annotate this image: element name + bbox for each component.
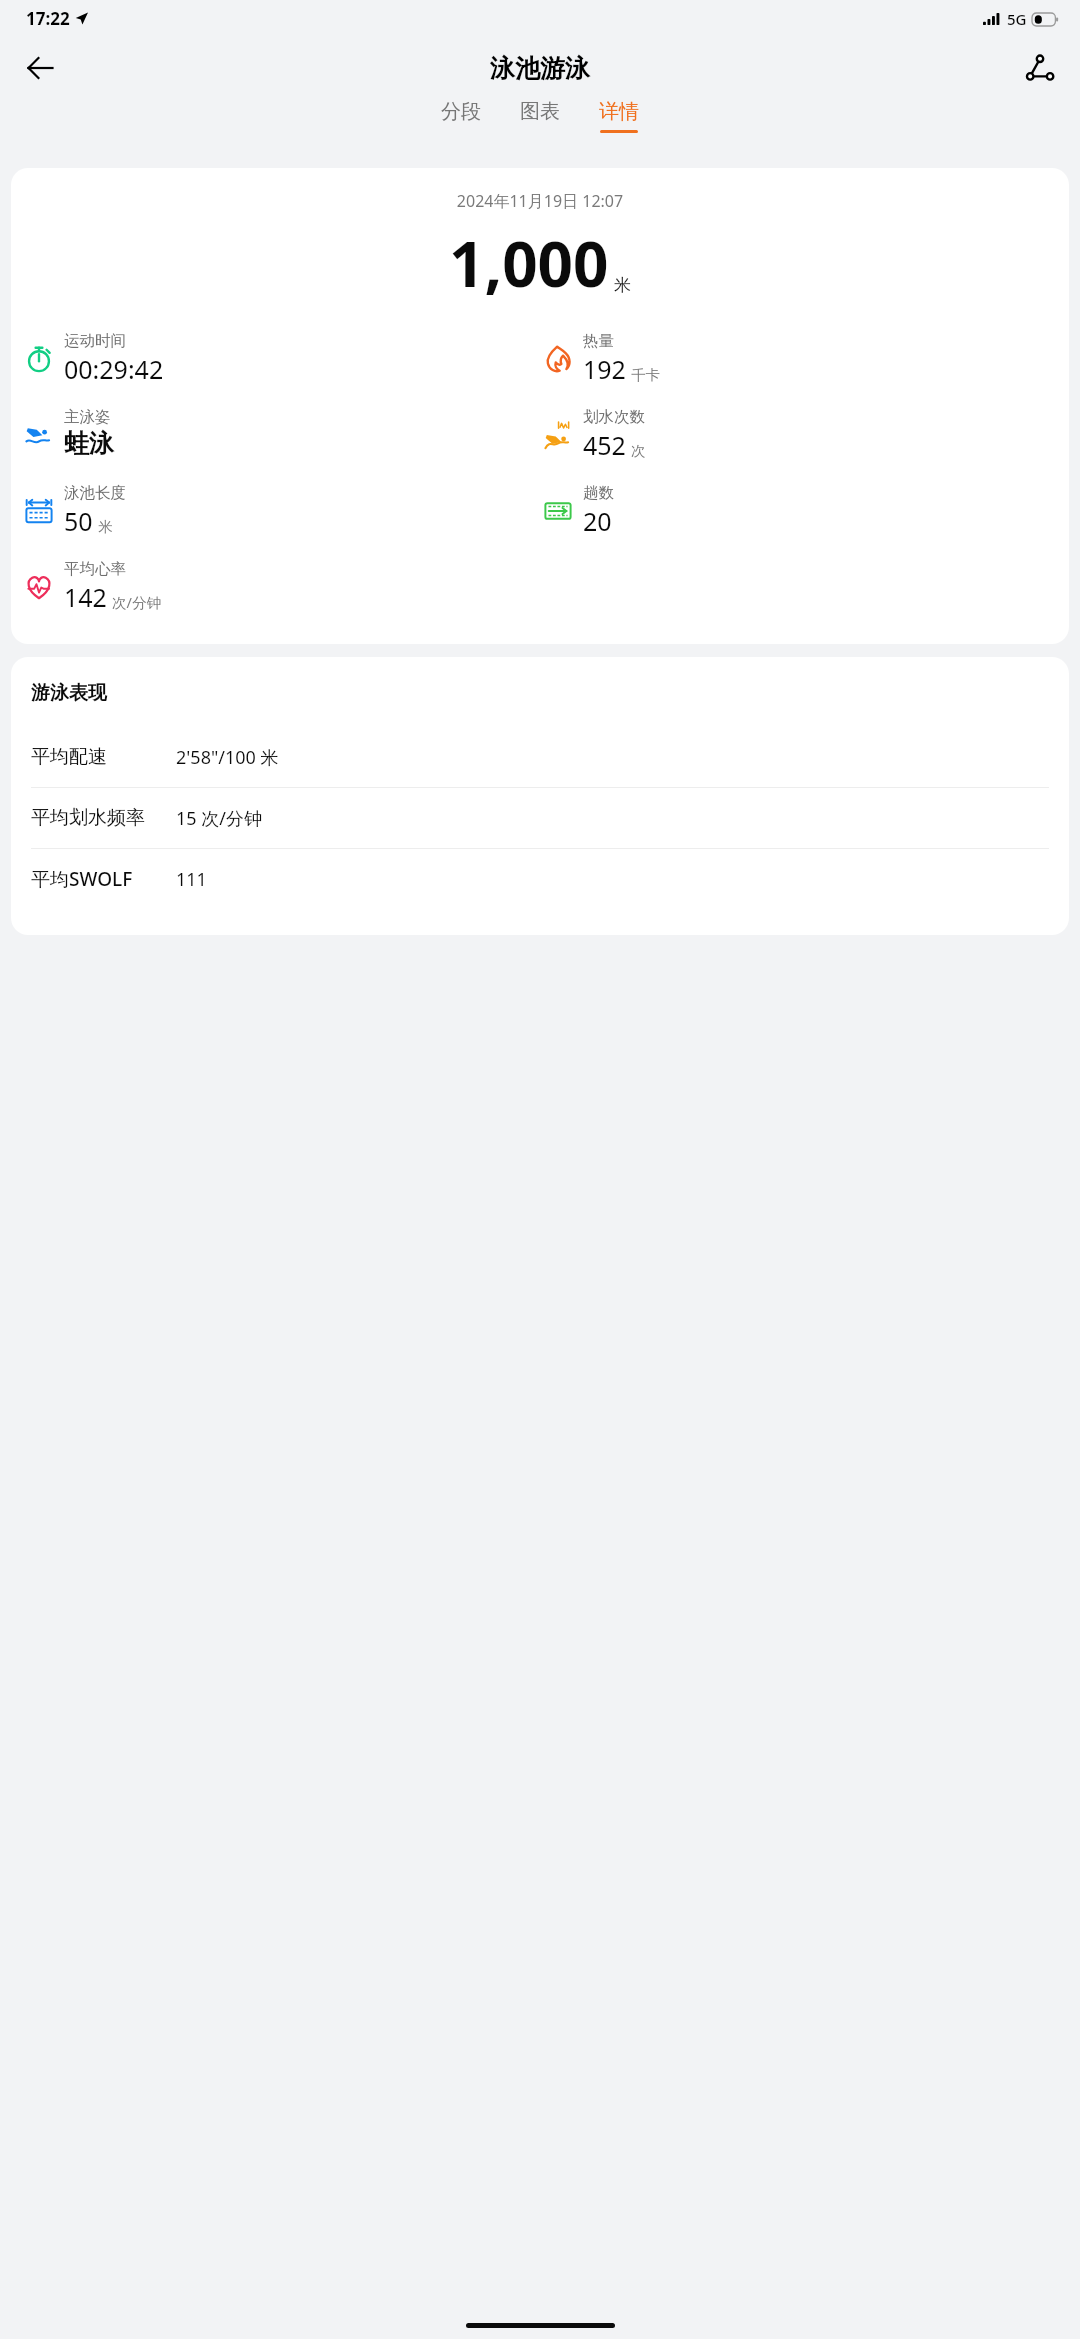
staticText: 平均配速: [31, 745, 107, 769]
staticText: 20: [583, 504, 612, 538]
staticText: 图表: [520, 99, 560, 124]
button[interactable]: 平均划水频率: [11, 788, 1069, 848]
staticText: 15 次/分钟: [176, 806, 262, 831]
staticText: 泳池游泳: [490, 53, 590, 84]
staticText: 主泳姿: [64, 407, 111, 427]
staticText: 千卡: [631, 366, 660, 384]
staticText: 蛙泳: [64, 428, 114, 459]
staticText: 00:29:42: [64, 352, 164, 386]
staticText: 热量: [583, 331, 614, 351]
staticText: 111: [176, 867, 207, 892]
staticText: 游泳表现: [31, 681, 107, 705]
button[interactable]: 详情: [595, 99, 643, 133]
staticText: 平均心率: [64, 559, 126, 579]
staticText: 泳池长度: [64, 483, 126, 503]
button[interactable]: 图表: [516, 99, 564, 130]
staticText: 划水次数: [583, 407, 645, 427]
staticText: 详情: [599, 99, 639, 124]
staticText: 分段: [441, 99, 481, 124]
staticText: 米: [614, 275, 631, 296]
staticText: 次: [631, 442, 646, 460]
button[interactable]: 平均配速: [11, 727, 1069, 787]
staticText: 17:22: [26, 7, 70, 30]
staticText: 平均划水频率: [31, 806, 145, 830]
staticText: 2024年11月19日 12:07: [11, 190, 1069, 212]
button[interactable]: Share: [1014, 42, 1066, 94]
staticText: 50: [64, 504, 93, 538]
button[interactable]: Back: [14, 42, 66, 94]
staticText: 452: [583, 428, 626, 462]
staticText: 平均SWOLF: [31, 866, 133, 892]
staticText: 1,000: [449, 221, 609, 305]
button[interactable]: 分段: [437, 99, 485, 130]
staticText: 142: [64, 580, 107, 614]
staticText: 米: [98, 518, 113, 536]
staticText: 运动时间: [64, 331, 126, 351]
staticText: 5G: [1007, 9, 1027, 29]
staticText: 2'58"/100 米: [176, 745, 279, 770]
staticText: 192: [583, 352, 626, 386]
button[interactable]: 平均SWOLF: [11, 849, 1069, 909]
staticText: 次/分钟: [112, 592, 161, 612]
staticText: 趟数: [583, 483, 614, 503]
